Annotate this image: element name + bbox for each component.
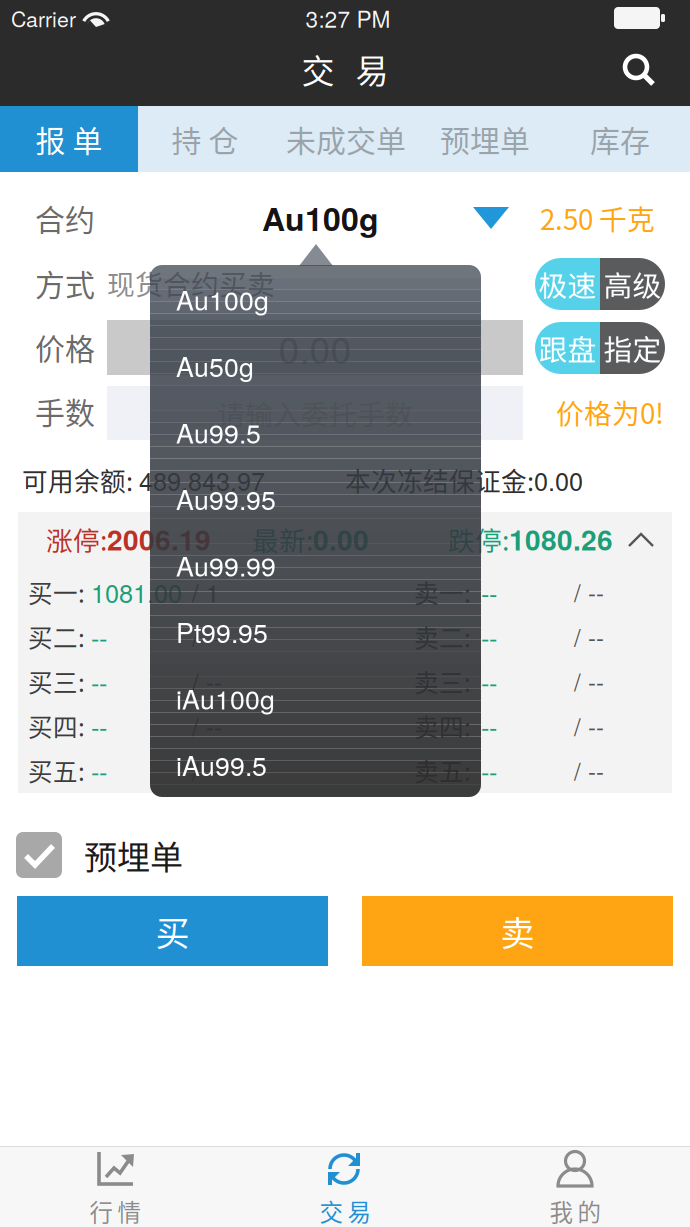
button[interactable]: 跟盘 <box>535 322 600 374</box>
button[interactable]: 行 情 <box>0 1152 230 1224</box>
button[interactable]: 预埋单 <box>16 826 276 884</box>
staticText: 跟盘 <box>538 327 596 369</box>
staticText: / -- <box>192 664 222 698</box>
staticText: -- <box>91 618 107 655</box>
staticText: -- <box>481 574 497 610</box>
button[interactable]: Au99.99 <box>150 533 481 597</box>
staticText: 卖 <box>500 906 534 956</box>
staticText: 1081.00 <box>91 574 182 610</box>
staticText: 买三: <box>28 663 85 699</box>
staticText: 卖一: <box>414 574 471 610</box>
staticText: / -- <box>192 619 222 654</box>
staticText: 手数 <box>35 389 95 433</box>
staticText: 预埋单 <box>84 831 183 879</box>
staticText: -- <box>481 752 497 789</box>
staticText: -- <box>481 618 497 655</box>
staticText: 买五: <box>28 753 85 788</box>
button[interactable]: 买 <box>17 896 328 966</box>
staticText: 最新: <box>252 520 313 558</box>
button[interactable]: Pt99.95 <box>150 599 481 663</box>
staticText: 买 <box>155 906 189 956</box>
staticText: -- <box>481 663 497 699</box>
staticText: 请输入委托手数 <box>217 393 413 433</box>
staticText: Au100g <box>176 280 269 318</box>
staticText: 卖三: <box>414 663 471 699</box>
staticText: 持 仓 <box>171 117 238 161</box>
staticText: 涨停: <box>46 520 107 558</box>
staticText: / -- <box>192 709 222 743</box>
staticText: Au99.99 <box>176 546 276 584</box>
staticText: 极速 <box>538 263 596 305</box>
staticText: -- <box>91 708 107 744</box>
button[interactable]: 极速 <box>535 258 600 310</box>
button[interactable]: Au100g <box>262 196 462 240</box>
staticText: 交 易 <box>301 45 388 93</box>
staticText: 卖四: <box>414 708 471 743</box>
staticText: 指定 <box>603 327 661 369</box>
button[interactable]: Au50g <box>150 333 481 397</box>
button[interactable]: iAu100g <box>150 666 481 730</box>
staticText: / -- <box>574 619 604 654</box>
staticText: 本次冻结保证金: <box>345 461 534 499</box>
staticText: 可用余额: <box>22 461 133 499</box>
staticText: / -- <box>574 575 604 609</box>
staticText: 1080.26 <box>509 519 613 559</box>
staticText: Au50g <box>176 346 254 385</box>
staticText: 价格为0! <box>556 392 664 432</box>
button[interactable]: Collapse quotes <box>618 521 664 559</box>
button[interactable]: 未成交单 <box>272 106 420 172</box>
staticText: 0.00 <box>278 321 351 374</box>
staticText: -- <box>91 663 107 699</box>
staticText: 库存 <box>590 117 650 161</box>
staticText: 卖五: <box>414 753 471 788</box>
staticText: Carrier <box>11 3 76 33</box>
staticText: 报 单 <box>35 117 102 161</box>
button[interactable]: Au99.95 <box>150 466 481 530</box>
button[interactable]: 卖 <box>362 896 673 966</box>
staticText: 我 的 <box>549 1194 600 1227</box>
staticText: iAu100g <box>176 679 275 717</box>
staticText: 方式 <box>35 261 95 305</box>
staticText: Pt99.95 <box>176 612 268 651</box>
staticText: 买一: <box>28 574 85 610</box>
staticText: Au99.5 <box>176 413 261 451</box>
button[interactable]: 库存 <box>550 106 690 172</box>
staticText: 合约 <box>35 196 95 240</box>
button[interactable]: 我 的 <box>460 1152 690 1224</box>
staticText: / 1 <box>192 575 219 609</box>
button[interactable]: Au99.5 <box>150 400 481 464</box>
staticText: Au99.95 <box>176 479 276 518</box>
staticText: 3:27 PM <box>305 2 390 34</box>
button[interactable]: 交 易 <box>230 1152 460 1224</box>
staticText: Au100g <box>262 195 379 241</box>
button[interactable]: Au100g <box>150 267 481 331</box>
staticText: -- <box>91 752 107 789</box>
staticText: 预埋单 <box>440 117 530 161</box>
staticText: iAu99.5 <box>176 745 267 784</box>
staticText: 未成交单 <box>286 117 406 161</box>
staticText: / -- <box>192 753 222 788</box>
staticText: 0.00 <box>534 462 583 498</box>
button[interactable]: 指定 <box>600 322 665 374</box>
button[interactable]: Choose contract <box>473 207 509 229</box>
staticText: -- <box>481 708 497 744</box>
button[interactable]: 预埋单 <box>420 106 550 172</box>
staticText: 买二: <box>28 619 85 654</box>
staticText: / -- <box>574 709 604 743</box>
staticText: 价格 <box>35 325 95 369</box>
staticText: / -- <box>574 664 604 698</box>
staticText: 高级 <box>603 263 661 305</box>
staticText: / -- <box>574 753 604 788</box>
button[interactable]: 高级 <box>600 258 665 310</box>
staticText: 卖二: <box>414 619 471 654</box>
button[interactable]: iAu99.5 <box>150 732 481 796</box>
staticText: 2.50 千克 <box>540 198 655 238</box>
staticText: 行 情 <box>89 1194 140 1227</box>
staticText: 跌停: <box>448 520 509 558</box>
button[interactable]: Search <box>600 41 680 101</box>
button[interactable]: 持 仓 <box>138 106 272 172</box>
staticText: 现货合约买卖 <box>107 263 275 303</box>
button[interactable]: 报 单 <box>0 106 138 172</box>
staticText: 2006.19 <box>107 519 211 559</box>
staticText: 489,843.97 <box>139 462 265 498</box>
